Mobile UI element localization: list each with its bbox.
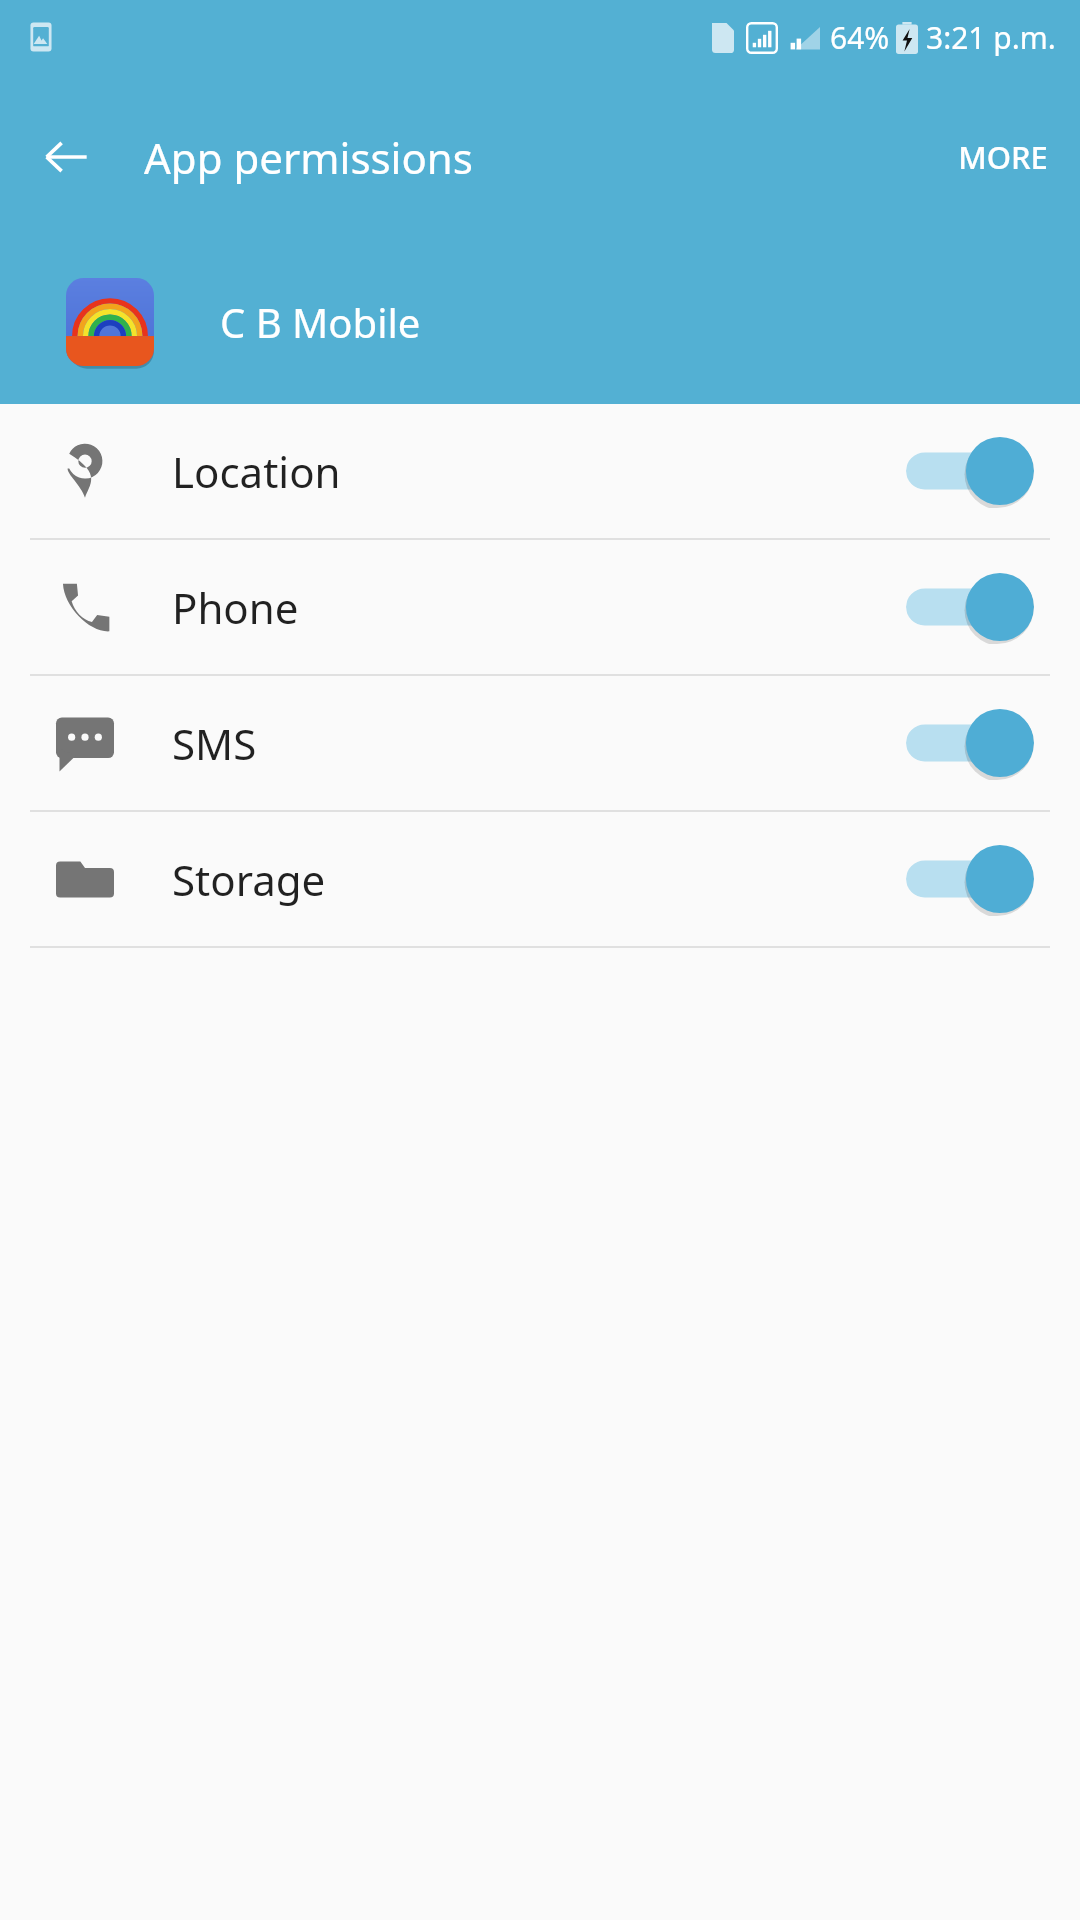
staticText: App permissions [144,129,473,186]
button[interactable]: Toggle permission [906,706,1034,780]
button[interactable]: Toggle permission [906,434,1034,508]
button[interactable]: Phone [0,540,1080,674]
staticText: C B Mobile [220,295,421,349]
staticText: 3:21 p.m. [926,17,1056,58]
button[interactable]: MORE [944,120,1062,194]
button[interactable]: C B Mobile [0,240,1080,404]
button[interactable]: Storage [0,812,1080,946]
staticText: Storage [172,851,906,908]
staticText: MORE [958,136,1048,178]
button[interactable]: Toggle permission [906,842,1034,916]
staticText: 64% [830,17,890,58]
staticText: Location [172,443,906,500]
button[interactable]: SMS [0,676,1080,810]
staticText: SMS [172,715,906,772]
button[interactable]: Back [30,121,102,193]
staticText: Phone [172,579,906,636]
button[interactable]: Location [0,404,1080,538]
button[interactable]: Toggle permission [906,570,1034,644]
